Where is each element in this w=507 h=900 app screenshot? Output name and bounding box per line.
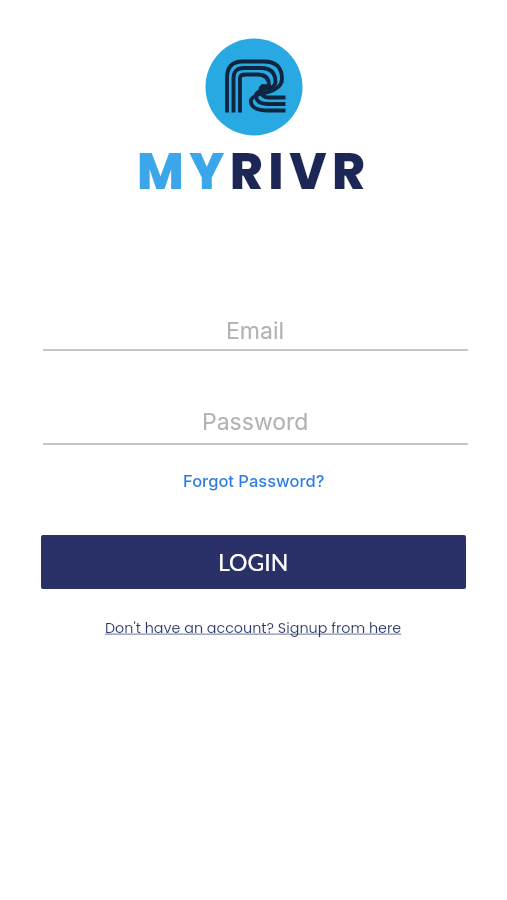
button[interactable]: LOGIN	[41, 535, 466, 589]
button[interactable]: Don't have an account? Signup from here	[105, 618, 402, 638]
button[interactable]: Forgot Password?	[183, 471, 325, 491]
staticText: Don't have an account? Signup from here	[105, 618, 402, 638]
staticText: Email	[226, 317, 285, 345]
button[interactable]: Email	[43, 302, 468, 351]
staticText: LOGIN	[218, 548, 289, 576]
button[interactable]: Password	[43, 396, 468, 445]
staticText: MYRIVR	[137, 137, 371, 195]
staticText: Forgot Password?	[183, 471, 325, 491]
staticText: Password	[202, 408, 309, 436]
